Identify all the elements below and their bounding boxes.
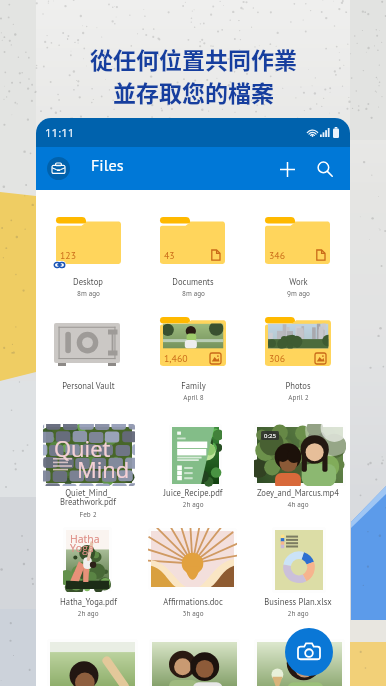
button[interactable]: Affirmations.doc [141,596,245,616]
button[interactable]: Documents [141,276,245,296]
staticText: Quiet_Mind_ Breathwork.pdf [60,487,116,508]
staticText: April 8 [183,393,204,402]
staticText: Business Plan.xlsx [264,596,332,607]
staticText: 從任何位置共同作業 [90,42,297,75]
staticText: 8m ago [77,289,100,298]
staticText: Files [91,155,124,176]
button[interactable]: 43 [160,217,225,264]
button[interactable]: Desktop [36,276,140,296]
staticText: Mind [77,454,130,484]
button[interactable] [47,639,138,686]
button[interactable]: Quiet [43,424,135,486]
staticText: 並存取您的檔案 [113,75,274,108]
staticText: 11:11 [45,125,75,141]
staticText: Yoga [70,541,94,555]
button[interactable]: Business Plan.xlsx [246,596,350,616]
staticText: Affirmations.doc [163,596,223,607]
button[interactable]: Family [141,380,245,400]
staticText: 3h ago [182,609,204,618]
staticText: Photos [285,380,311,391]
staticText: 2h ago [287,609,309,618]
staticText: 306 [269,352,286,365]
button[interactable] [169,424,222,487]
button[interactable]: Zoey_and_Marcus.mp4 [246,487,350,507]
button[interactable]: Work account [47,157,70,180]
staticText: Hatha [70,532,100,546]
staticText: Personal Vault [62,380,115,391]
button[interactable]: Search [310,154,340,184]
staticText: 346 [269,249,286,262]
staticText: 123 [60,249,77,262]
staticText: Feb 2 [79,510,97,519]
button[interactable] [149,639,240,686]
staticText: Documents [172,276,214,287]
staticText: Juice_Recipe.pdf [163,487,223,498]
staticText: Quiet [54,433,111,463]
button[interactable] [254,639,345,686]
button[interactable] [272,527,326,593]
button[interactable] [148,528,237,590]
button[interactable]: Hatha_Yoga.pdf [36,596,140,616]
staticText: Work [289,276,308,287]
staticText: 0:25 [264,432,276,440]
staticText: Zoey_and_Marcus.mp4 [257,487,339,498]
staticText: 1,460 [164,352,188,365]
staticText: 4h ago [287,500,309,509]
button[interactable] [54,323,120,366]
button[interactable]: 346 [265,217,330,264]
button[interactable]: Hatha [63,527,112,592]
button[interactable]: Take photo [285,628,333,676]
staticText: 2h ago [77,609,99,618]
staticText: 43 [164,249,175,262]
staticText: Hatha_Yoga.pdf [60,596,117,607]
button[interactable]: Add [272,154,302,184]
button[interactable]: Work [246,276,350,296]
button[interactable]: 306 [265,317,331,366]
button[interactable]: Juice_Recipe.pdf [141,487,245,507]
button[interactable]: 0:25 [254,424,346,486]
staticText: 8m ago [182,289,205,298]
button[interactable]: 1,460 [160,317,226,366]
staticText: Desktop [73,276,103,287]
button[interactable]: Personal Vault [36,380,140,391]
button[interactable]: 123 [56,217,121,264]
button[interactable]: Quiet_Mind_ Breathwork.pdf [36,487,140,517]
button[interactable]: Photos [246,380,350,400]
staticText: April 2 [288,393,309,402]
staticText: Family [181,380,206,391]
staticText: 9m ago [287,289,310,298]
staticText: 2h ago [182,500,204,509]
